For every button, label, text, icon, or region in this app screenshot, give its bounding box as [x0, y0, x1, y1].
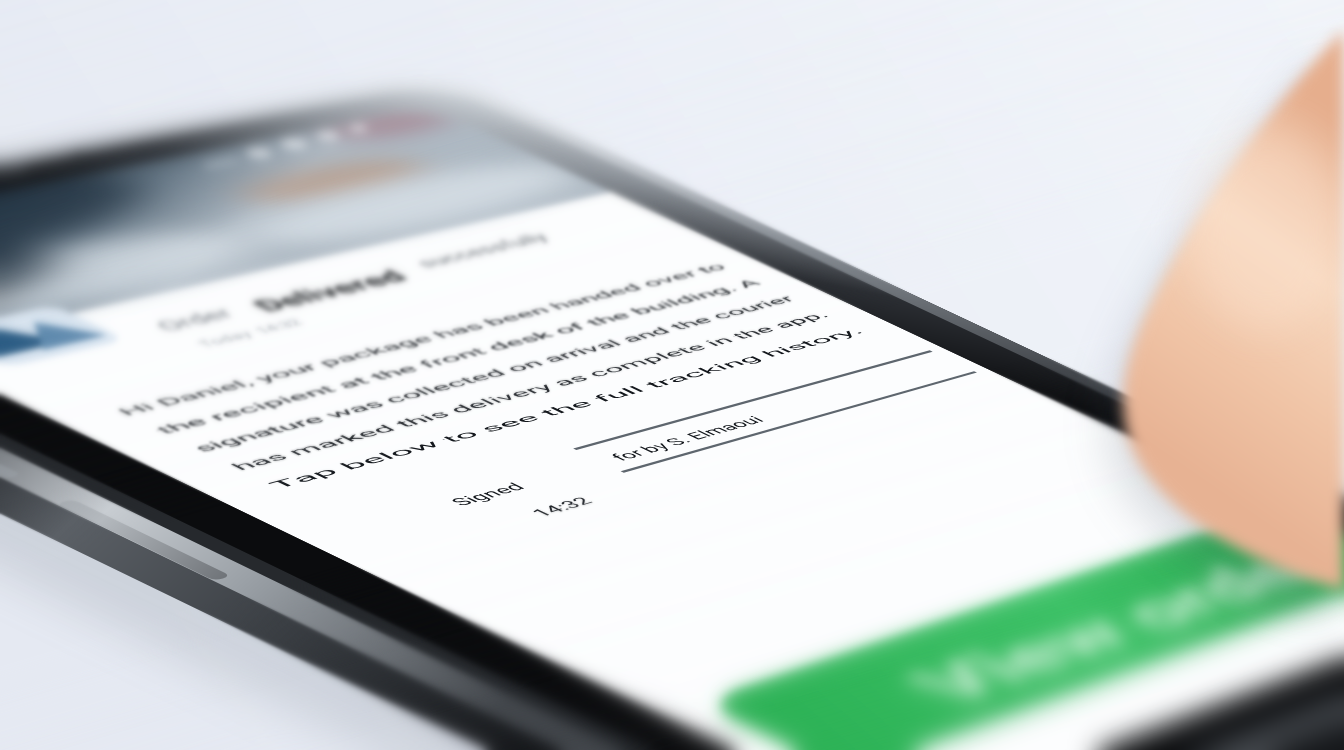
button[interactable]: View order — [640, 470, 1344, 750]
button[interactable]: Sender logo — [0, 300, 80, 370]
button[interactable]: Order delivered successfully — [120, 250, 880, 480]
other: Photo of a phone showing a delivery conf… — [0, 0, 1344, 750]
